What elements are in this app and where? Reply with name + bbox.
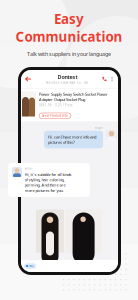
staticText: Communication — [15, 28, 122, 45]
staticText: Seller — [24, 167, 32, 170]
button[interactable]: Call supplier — [100, 76, 108, 82]
staticText: Buyer — [95, 126, 103, 129]
staticText: Easy — [54, 10, 84, 28]
staticText: Send Product Info — [42, 114, 68, 117]
staticText: FAQ — [29, 264, 34, 268]
staticText: US $1.96 - 3.25 / Piece — [39, 103, 73, 107]
button[interactable]: More options — [108, 76, 114, 82]
staticText: Talk with suppliers in your language — [27, 50, 111, 57]
staticText: Power Supply Sway Switch Socket Power Ad… — [39, 91, 108, 102]
staticText: Shenzhen Canal Trade Co., Ltd. — [46, 81, 89, 84]
button[interactable]: Send Product Info — [39, 113, 71, 118]
staticText: Hi, it's suitable for all kinds of styli… — [24, 172, 71, 193]
staticText: Dontest — [57, 73, 77, 81]
button[interactable]: Back — [25, 72, 35, 86]
button[interactable]: FAQ — [24, 263, 36, 269]
staticText: Hi, can I have more info and pictures of… — [48, 134, 96, 145]
